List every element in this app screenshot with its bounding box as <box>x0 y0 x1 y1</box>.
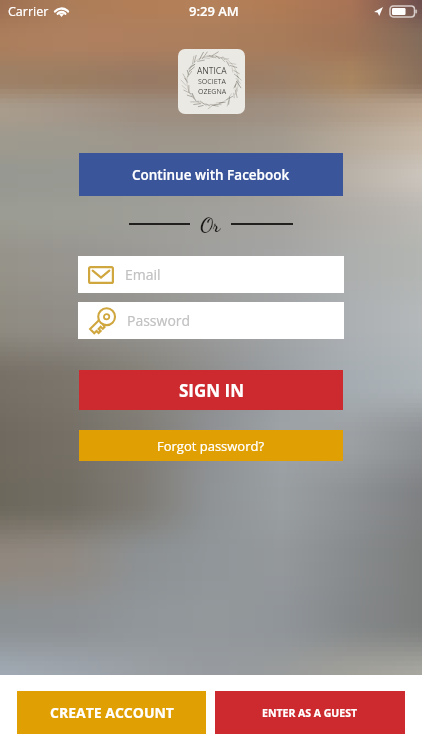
staticText: ANTICA <box>197 65 227 77</box>
button[interactable]: CREATE ACCOUNT <box>17 691 206 734</box>
staticText: Carrier <box>8 3 49 20</box>
staticText: SIGN IN <box>179 379 244 402</box>
staticText: Or <box>200 213 221 235</box>
button[interactable]: SIGN IN <box>79 370 343 410</box>
button[interactable]: ENTER AS A GUEST <box>215 691 405 734</box>
staticText: Continue with Facebook <box>132 166 290 184</box>
staticText: SOCIETA <box>198 77 226 87</box>
button[interactable]: Continue with Facebook <box>79 153 343 196</box>
staticText: CREATE ACCOUNT <box>50 703 174 722</box>
button[interactable]: Email <box>78 256 344 293</box>
staticText: Forgot password? <box>157 437 265 455</box>
staticText: Email <box>125 265 161 284</box>
button[interactable]: Password <box>78 302 344 339</box>
button[interactable]: Forgot password? <box>79 430 343 461</box>
staticText: ENTER AS A GUEST <box>262 706 358 720</box>
staticText: OZEGNA <box>198 87 227 97</box>
staticText: Password <box>127 311 191 330</box>
staticText: 9:29 AM <box>189 2 239 20</box>
